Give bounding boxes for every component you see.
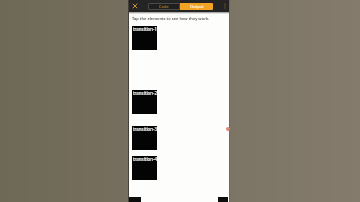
button[interactable]: Code [148,3,180,10]
button[interactable]: Output [180,3,213,10]
button[interactable]: transition-3 [132,126,157,150]
button[interactable]: transition-4 [132,156,157,180]
staticText: Tap the elements to see how they work. [132,16,210,21]
staticText: transition-2 [133,90,157,96]
staticText: Output [190,4,204,9]
button[interactable]: transition-2 [132,90,157,114]
staticText: transition-4 [133,156,157,162]
staticText: Code [159,4,169,9]
staticText: transition-1 [133,26,157,32]
staticText: transition-3 [133,126,157,132]
button[interactable]: More options [221,2,229,10]
button[interactable]: transition-1 [132,26,157,50]
button[interactable]: Close [131,2,139,10]
